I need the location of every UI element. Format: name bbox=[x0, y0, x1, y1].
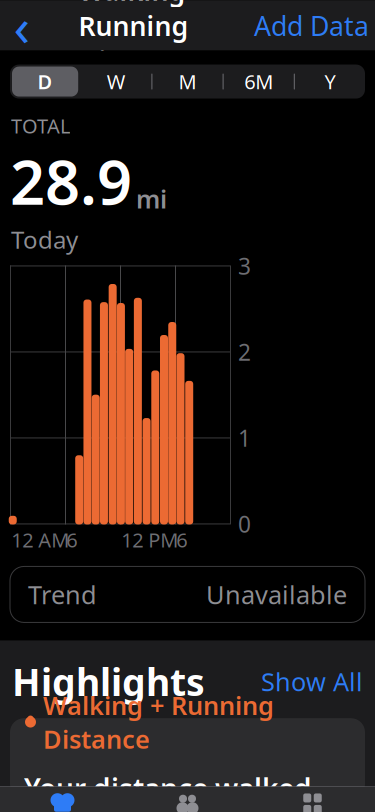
staticText: Walking + Running Distance bbox=[78, 0, 207, 79]
button[interactable]: W bbox=[81, 65, 151, 99]
staticText: 28.9 bbox=[10, 140, 132, 221]
staticText: 3 bbox=[238, 251, 251, 281]
staticText: Add Data bbox=[254, 8, 369, 43]
staticText: M bbox=[178, 68, 196, 95]
staticText: D bbox=[38, 68, 53, 95]
staticText: 6 bbox=[66, 526, 77, 553]
staticText: ‹ bbox=[13, 0, 30, 61]
button[interactable]: Y bbox=[295, 65, 365, 99]
button[interactable]: Walking + Running Distance bbox=[10, 718, 365, 798]
staticText: Show All bbox=[261, 665, 363, 698]
button[interactable]: Summary bbox=[0, 784, 125, 812]
button[interactable]: D bbox=[10, 65, 80, 99]
staticText: 0 bbox=[238, 509, 251, 539]
staticText: 6 bbox=[176, 526, 187, 553]
staticText: 12 AM bbox=[11, 526, 69, 553]
staticText: TOTAL bbox=[11, 113, 70, 139]
staticText: Unavailable bbox=[206, 578, 347, 611]
staticText: Your distance walked and run over the bbox=[24, 770, 312, 812]
button[interactable]: Trend bbox=[10, 566, 365, 622]
button[interactable]: 6M bbox=[224, 65, 294, 99]
staticText: mi bbox=[136, 182, 167, 215]
staticText: Walking + Running Distance bbox=[43, 688, 274, 756]
staticText: Highlights bbox=[12, 657, 205, 706]
staticText: 1 bbox=[238, 423, 251, 453]
button[interactable]: M bbox=[152, 65, 223, 99]
button[interactable]: Back bbox=[6, 4, 38, 48]
button[interactable]: Sharing bbox=[125, 784, 250, 812]
button[interactable]: Browse bbox=[250, 784, 375, 812]
staticText: Trend bbox=[28, 578, 97, 611]
staticText: 6M bbox=[244, 68, 273, 95]
button[interactable]: Show All bbox=[261, 665, 363, 698]
staticText: 2 bbox=[238, 337, 251, 367]
staticText: Y bbox=[324, 68, 335, 95]
staticText: W bbox=[107, 68, 126, 95]
staticText: 12 PM bbox=[121, 526, 178, 553]
button[interactable]: Add Data bbox=[248, 8, 369, 43]
staticText: Today bbox=[11, 224, 78, 255]
